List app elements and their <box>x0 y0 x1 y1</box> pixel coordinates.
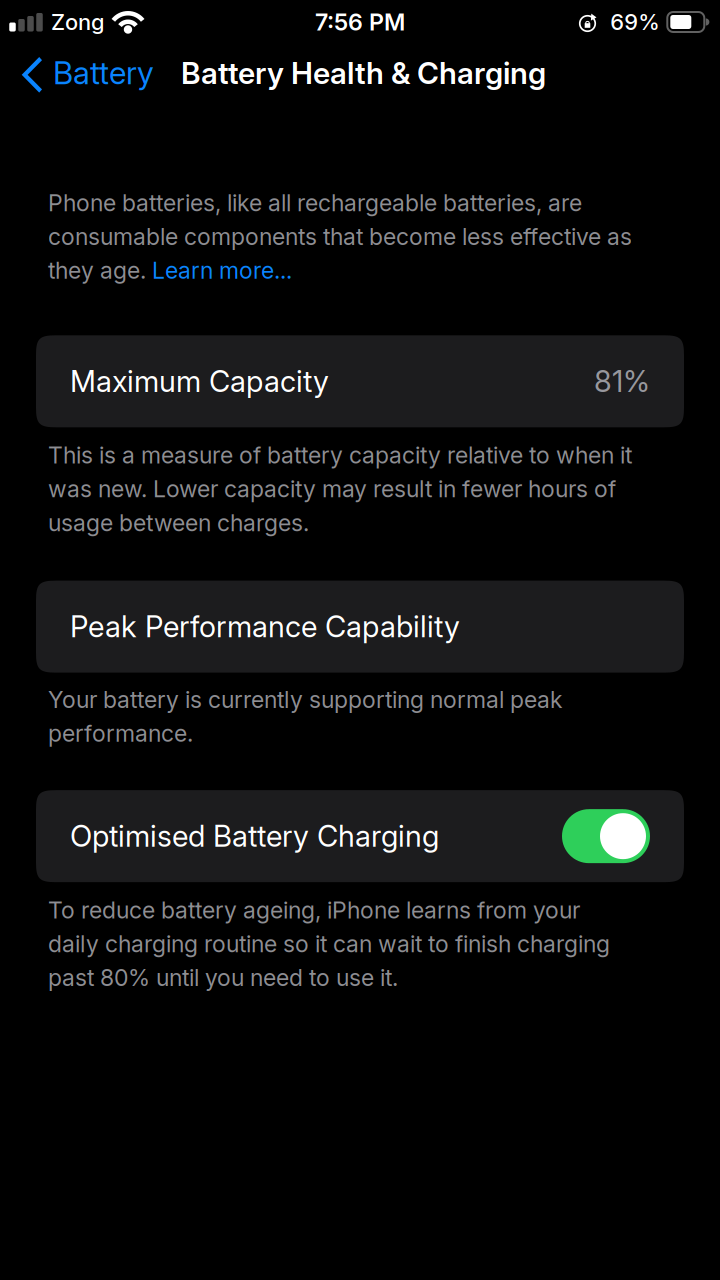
staticText: To reduce battery ageing, iPhone learns … <box>48 893 610 994</box>
staticText: Peak Performance Capability <box>70 610 460 643</box>
button[interactable]: Battery <box>0 47 164 99</box>
staticText: Zong <box>51 10 104 34</box>
staticText: 7:56 PM <box>315 9 405 35</box>
staticText: Maximum Capacity <box>70 365 329 398</box>
staticText: Optimised Battery Charging <box>70 820 439 852</box>
staticText: consumable components that become less e… <box>48 220 632 254</box>
button[interactable]: Learn more... <box>152 253 292 287</box>
button[interactable]: Peak Performance Capability <box>36 581 684 673</box>
staticText: Your battery is currently supporting nor… <box>48 683 562 750</box>
staticText: 69% <box>610 10 659 34</box>
button[interactable]: Optimised Battery Charging <box>36 790 684 882</box>
staticText: This is a measure of battery capacity re… <box>48 438 632 540</box>
staticText: Battery <box>53 56 154 90</box>
staticText: Phone batteries, like all rechargeable b… <box>48 186 582 220</box>
staticText: Learn more... <box>152 253 292 287</box>
staticText: 81% <box>594 365 650 398</box>
button[interactable]: Maximum Capacity <box>36 335 684 427</box>
staticText: they age. <box>48 253 152 287</box>
staticText: Battery Health & Charging <box>181 56 546 90</box>
